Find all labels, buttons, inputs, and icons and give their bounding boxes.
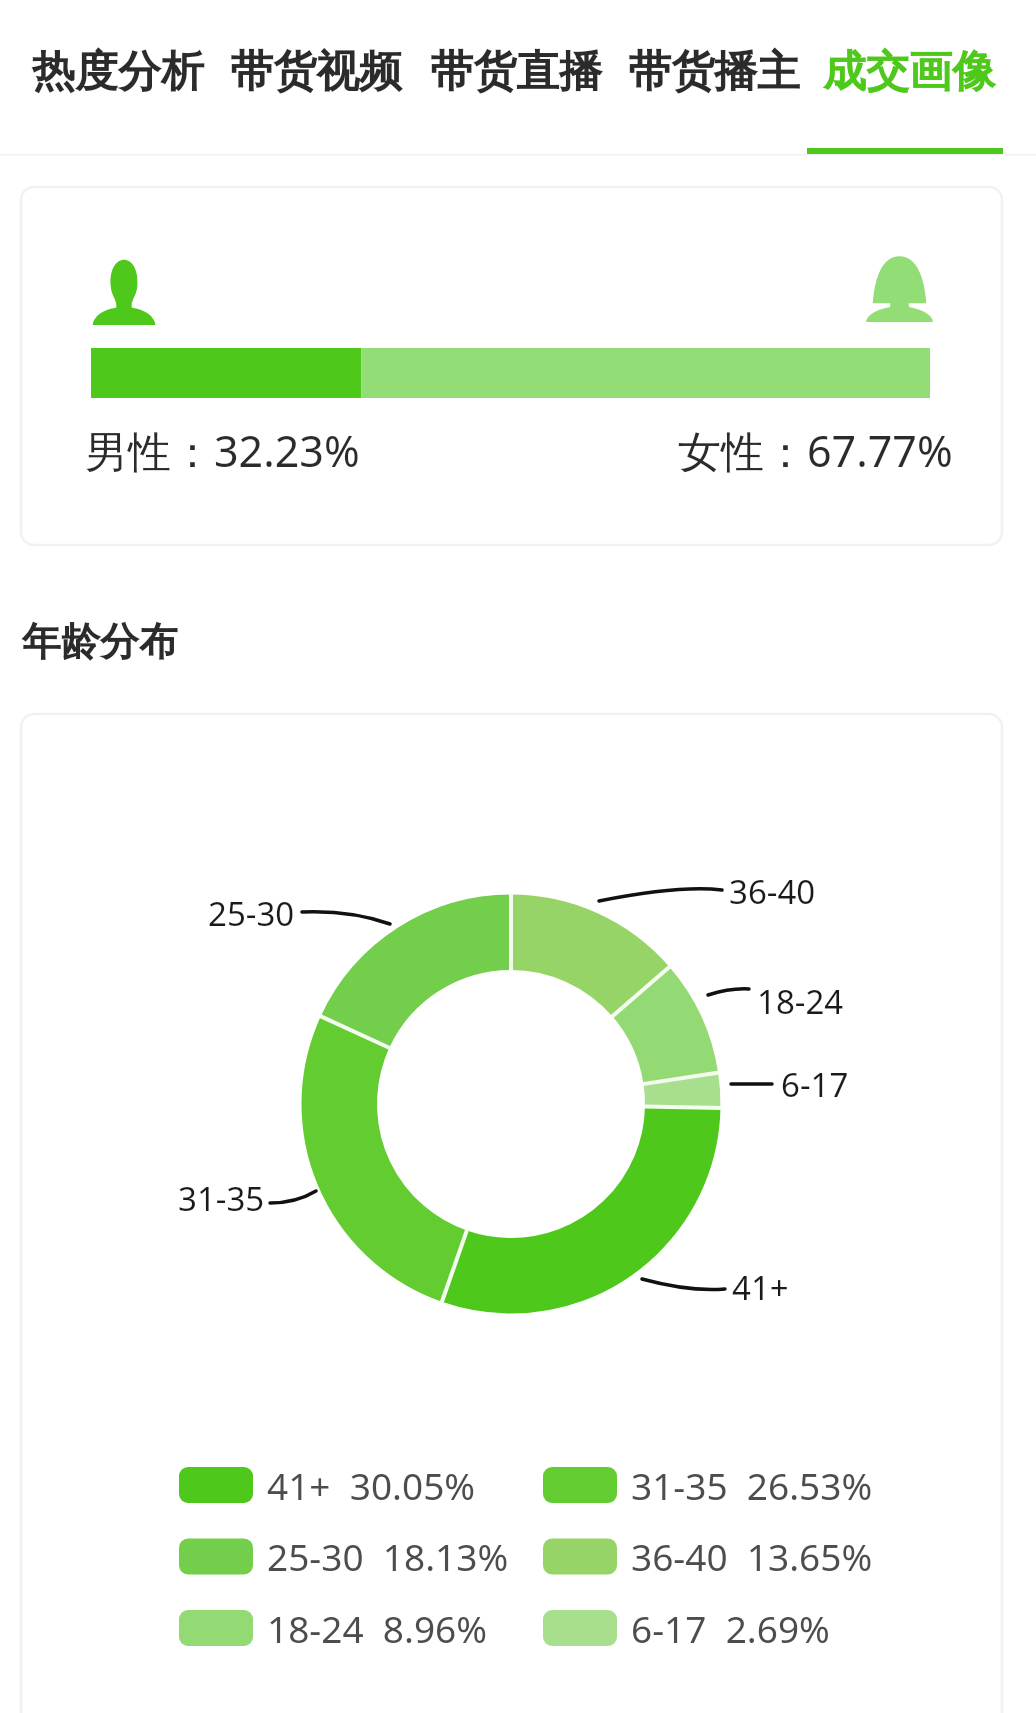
staticText: 25-30 18.13% (267, 1531, 509, 1579)
button[interactable]: 6-17 2.69% (543, 1603, 879, 1651)
staticText: 41+ 30.05% (267, 1460, 476, 1508)
staticText: 18-24 8.96% (267, 1603, 487, 1651)
staticText: 男性：32.23% (85, 421, 360, 480)
staticText: 带货直播 (430, 45, 602, 99)
button[interactable]: 18-24 8.96% (179, 1603, 515, 1651)
button[interactable]: 25-30 18.13% (179, 1531, 515, 1579)
button[interactable]: 男性：32.23% (21, 405, 1002, 500)
staticText: 31-35 26.53% (631, 1460, 873, 1508)
button[interactable]: 带货直播 (418, 18, 614, 138)
button[interactable]: 31-35 26.53% (543, 1460, 879, 1508)
staticText: 31-35 (178, 1176, 265, 1221)
button[interactable]: 男性 Male (88, 252, 162, 332)
staticText: 18-24 (757, 979, 844, 1024)
staticText: 6-17 2.69% (631, 1603, 830, 1651)
staticText: 带货播主 (628, 45, 800, 99)
staticText: 36-40 (729, 869, 816, 914)
staticText: 成交画像 (823, 45, 995, 99)
staticText: 带货视频 (230, 45, 402, 99)
button[interactable]: 带货视频 (218, 18, 414, 138)
staticText: 41+ (732, 1265, 789, 1310)
staticText: 25-30 (208, 891, 295, 936)
button[interactable]: 热度分析 (20, 18, 216, 138)
staticText: 6-17 (781, 1062, 849, 1107)
button[interactable]: 带货播主 (616, 18, 812, 138)
button[interactable]: 41+ 30.05% (179, 1460, 515, 1508)
staticText: 女性：67.77% (678, 421, 953, 480)
button[interactable]: 36-40 13.65% (543, 1531, 879, 1579)
button[interactable]: 成交画像 (811, 18, 1007, 138)
staticText: 年龄分布 (22, 617, 178, 666)
staticText: 36-40 13.65% (631, 1531, 873, 1579)
button[interactable]: 女性 Female (862, 250, 938, 330)
staticText: 热度分析 (32, 45, 204, 99)
